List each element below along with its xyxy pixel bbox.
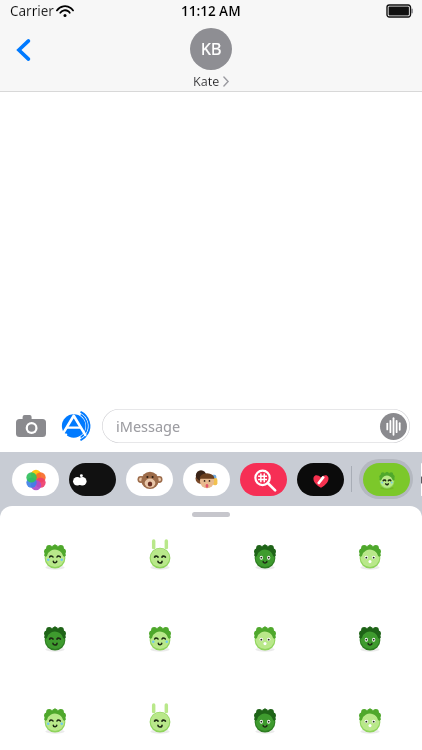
button[interactable]: Cabbage sticker 3: [242, 533, 288, 579]
button[interactable]: Animoji: [126, 463, 173, 496]
button[interactable]: Cabbage stickers: [359, 459, 413, 499]
button[interactable]: Record audio message: [378, 411, 408, 441]
button[interactable]: Camera: [14, 409, 48, 443]
button[interactable]: App Store: [58, 409, 92, 443]
staticText: Kate: [193, 73, 220, 90]
button[interactable]: iMessage: [102, 409, 410, 443]
button[interactable]: Cabbage sticker 9: [32, 697, 78, 743]
button[interactable]: Cabbage sticker 1: [32, 533, 78, 579]
button[interactable]: Digital Touch: [297, 463, 344, 496]
staticText: 11:12 AM: [181, 2, 241, 20]
button[interactable]: Cabbage sticker 7: [242, 615, 288, 661]
staticText: Carrier: [10, 2, 54, 20]
button[interactable]: Cabbage sticker 12: [347, 697, 393, 743]
button[interactable]: Memoji: [183, 463, 230, 496]
staticText: KB: [201, 38, 222, 60]
button[interactable]: Cabbage sticker 2: [137, 533, 183, 579]
button[interactable]: More: [421, 463, 422, 496]
button[interactable]: Apple Pay: [69, 463, 116, 496]
button[interactable]: Cabbage sticker 8: [347, 615, 393, 661]
button[interactable]: Photos: [12, 463, 59, 496]
button[interactable]: Cabbage sticker 4: [347, 533, 393, 579]
button[interactable]: Back: [4, 30, 44, 70]
staticText: iMessage: [116, 416, 181, 436]
button[interactable]: Images: [240, 463, 287, 496]
button[interactable]: KB: [190, 28, 232, 90]
button[interactable]: Cabbage sticker 5: [32, 615, 78, 661]
button[interactable]: Resize sticker drawer: [192, 512, 230, 517]
button[interactable]: Cabbage sticker 6: [137, 615, 183, 661]
button[interactable]: Cabbage sticker 10: [137, 697, 183, 743]
button[interactable]: Cabbage sticker 11: [242, 697, 288, 743]
